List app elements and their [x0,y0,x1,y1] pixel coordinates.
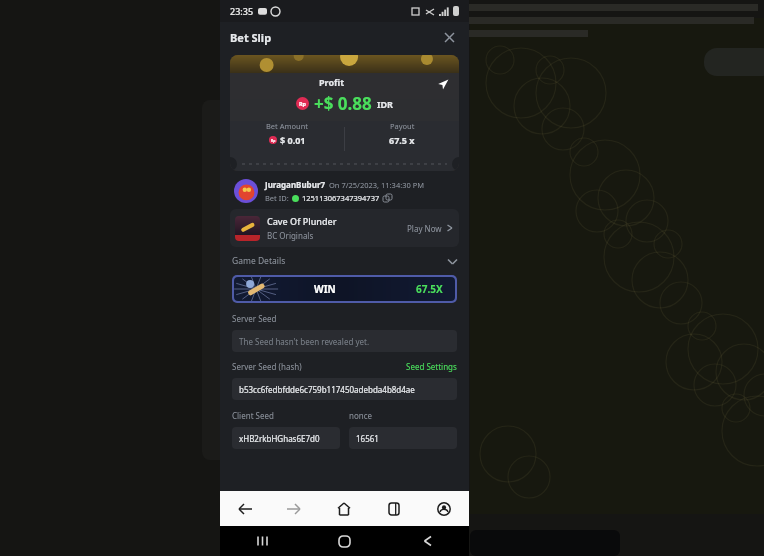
button[interactable]: Back [220,491,269,526]
staticText: The Seed hasn't been revealed yet. [239,336,370,347]
button[interactable]: Forward [269,491,319,526]
button[interactable]: Cave Of Plunder [230,209,459,247]
staticText: Play Now [407,223,442,234]
staticText: BC Originals [267,230,314,241]
staticText: 125113067347394737 [302,193,380,203]
staticText: xHB2rkbHGhas6E7d0 [239,433,320,444]
staticText: IDR [377,98,393,110]
button[interactable]: Back [386,526,469,556]
staticText: Client Seed [232,410,274,421]
staticText: Seed Settings [406,361,457,372]
staticText: 67.5X [416,282,443,296]
staticText: 16561 [356,433,379,444]
staticText: Bet Slip [230,30,272,45]
staticText: +$ 0.88 [314,92,372,115]
staticText: JuraganBubur7 [265,179,326,190]
staticText: Rp [271,138,276,143]
button[interactable]: Tabs [369,491,419,526]
staticText: Server Seed [232,313,277,324]
staticText: WIN [314,282,336,296]
button[interactable]: Home [303,526,386,556]
staticText: Bet ID: [265,193,289,203]
staticText: Cave Of Plunder [267,215,337,227]
staticText: Payout [390,121,415,131]
staticText: nonce [349,410,373,421]
button[interactable]: Share [435,76,451,92]
staticText: Bet Amount [266,121,309,131]
button[interactable]: Recents [220,526,303,556]
staticText: 67.5 x [389,134,415,146]
staticText: 23:35 [230,5,254,17]
staticText: On 7/25/2023, 11:34:30 PM [329,180,425,190]
button[interactable]: Copy Bet ID [383,194,392,203]
staticText: Rp [299,100,307,107]
staticText: b53cc6fedbfdde6c759b117450adebda4b8d4ae [239,384,415,395]
button[interactable]: Close [439,27,459,47]
staticText: $ 0.01 [280,134,306,146]
staticText: Server Seed (hash) [232,361,302,372]
button[interactable]: Home [319,491,369,526]
staticText: Profit [319,76,345,88]
staticText: Game Details [232,255,286,267]
button[interactable]: Account [419,491,469,526]
button[interactable]: Game Details [232,255,457,267]
button[interactable]: Seed Settings [406,361,457,372]
